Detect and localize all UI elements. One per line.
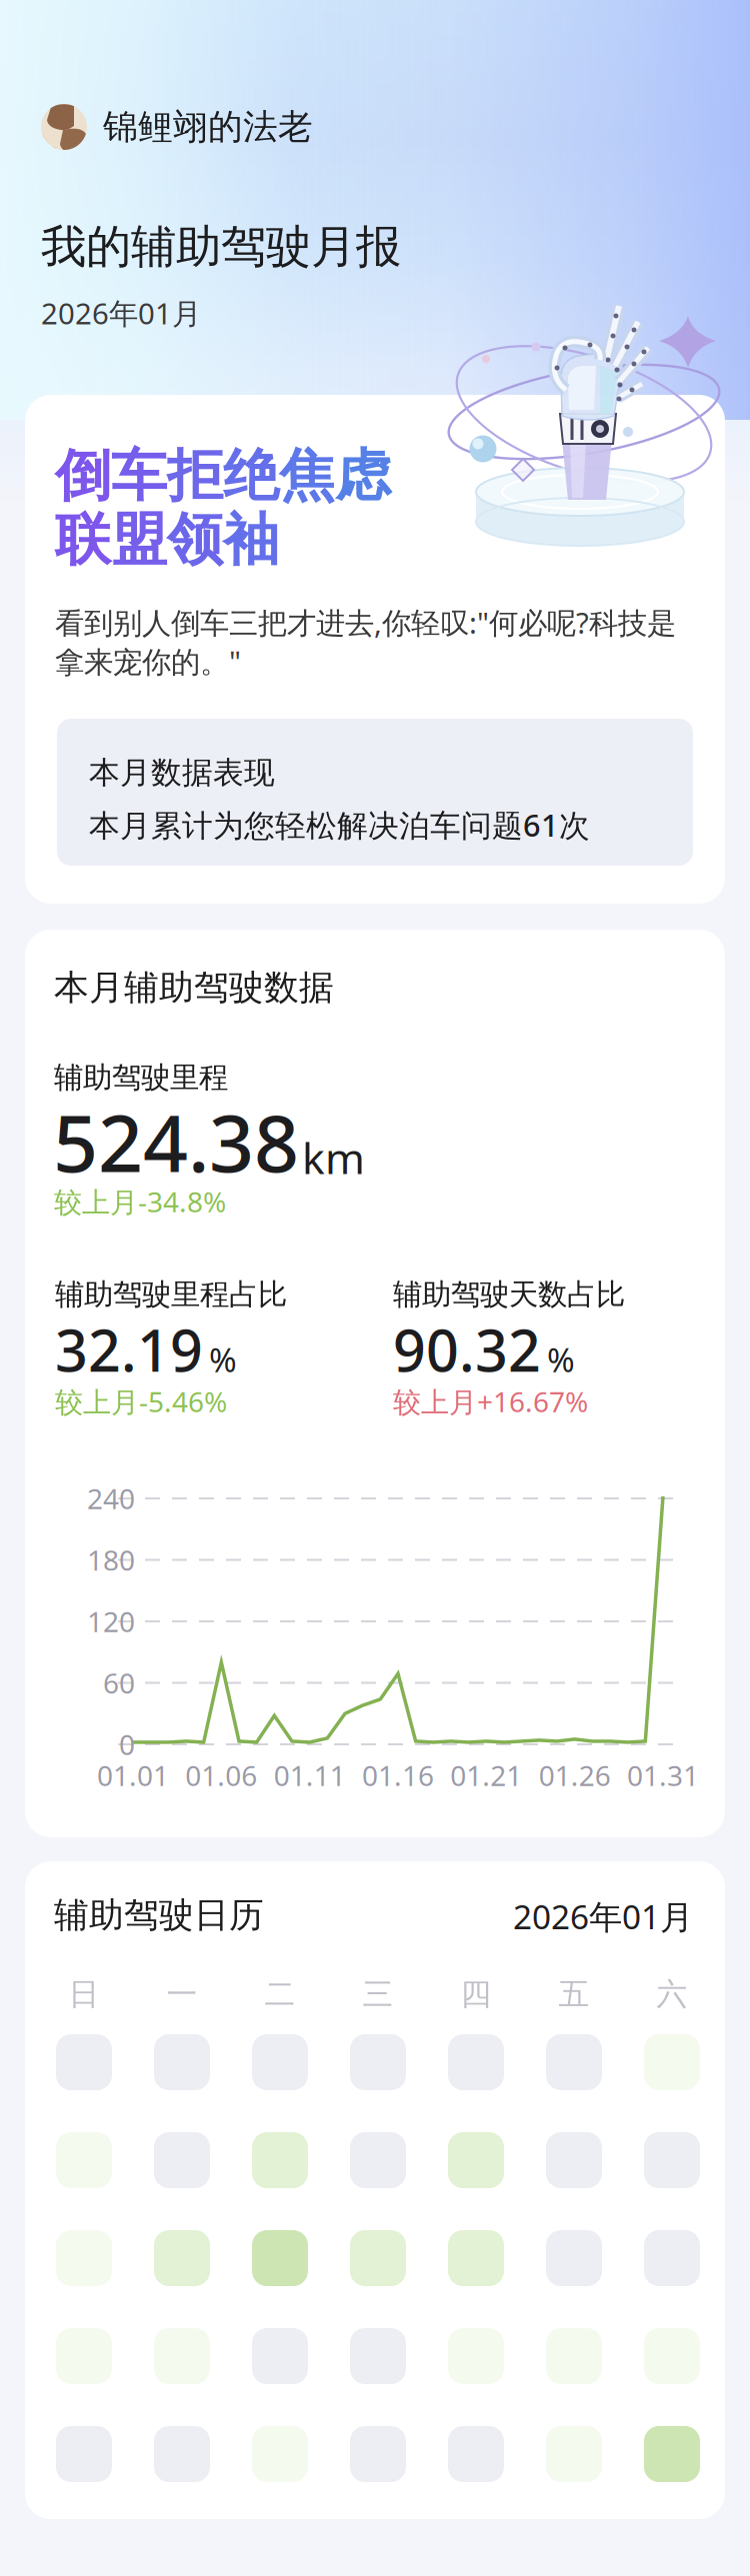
staticText: 01.16 [362, 1757, 434, 1794]
staticText: 袖 [223, 505, 279, 574]
staticText: 虑 [335, 441, 391, 510]
staticText: 较上月-5.46% [55, 1383, 227, 1420]
staticText: 180 [87, 1541, 135, 1578]
staticText: 锦鲤翊的法老 [103, 106, 313, 148]
staticText: 辅助驾驶里程占比 [55, 1277, 287, 1312]
staticText: 看到别人倒车三把才进去,你轻叹:"何必呢?科技是拿来宠你的。" [55, 603, 676, 681]
staticText: 2026年01月 [41, 293, 201, 332]
staticText: % [547, 1337, 575, 1382]
staticText: 四 [460, 1975, 491, 2013]
staticText: 32.19 [55, 1311, 203, 1387]
staticText: 90.32 [393, 1311, 541, 1387]
staticText: 盟 [111, 505, 167, 574]
staticText: 一 [166, 1975, 197, 2013]
staticText: 0 [119, 1726, 135, 1763]
staticText: 辅助驾驶日历 [54, 1894, 264, 1937]
staticText: 01.31 [627, 1757, 699, 1794]
staticText: 倒 [55, 441, 111, 510]
staticText: 较上月-34.8% [54, 1183, 226, 1220]
staticText: 较上月+16.67% [393, 1383, 588, 1420]
staticText: 60 [103, 1664, 135, 1701]
staticText: 01.01 [97, 1757, 169, 1794]
staticText: 绝 [223, 441, 279, 510]
staticText: 524.38 [53, 1089, 299, 1194]
staticText: 01.26 [539, 1757, 611, 1794]
staticText: 240 [87, 1480, 135, 1517]
staticText: 六 [656, 1975, 687, 2013]
staticText: 01.21 [450, 1757, 522, 1794]
staticText: 三 [362, 1975, 393, 2013]
staticText: 01.11 [274, 1757, 346, 1794]
staticText: 2026年01月 [513, 1894, 693, 1938]
staticText: 联 [55, 505, 111, 574]
staticText: 辅助驾驶天数占比 [393, 1277, 625, 1312]
staticText: km [302, 1129, 365, 1186]
staticText: % [209, 1337, 237, 1382]
button[interactable]: 锦鲤翊的法老 [41, 101, 421, 153]
staticText: 本月数据表现 [89, 754, 275, 792]
staticText: 五 [558, 1975, 589, 2013]
staticText: 01.06 [185, 1757, 257, 1794]
staticText: 我的辅助驾驶月报 [41, 219, 401, 275]
staticText: 日 [68, 1975, 99, 2013]
staticText: 车 [111, 441, 167, 510]
staticText: 领 [167, 505, 223, 574]
staticText: 辅助驾驶里程 [54, 1060, 228, 1096]
staticText: 焦 [279, 441, 335, 510]
staticText: 本月辅助驾驶数据 [54, 966, 334, 1009]
staticText: 本月累计为您轻松解决泊车问题61次 [89, 804, 590, 845]
staticText: 拒 [167, 441, 223, 510]
staticText: 120 [87, 1603, 135, 1640]
staticText: 二 [264, 1975, 295, 2013]
